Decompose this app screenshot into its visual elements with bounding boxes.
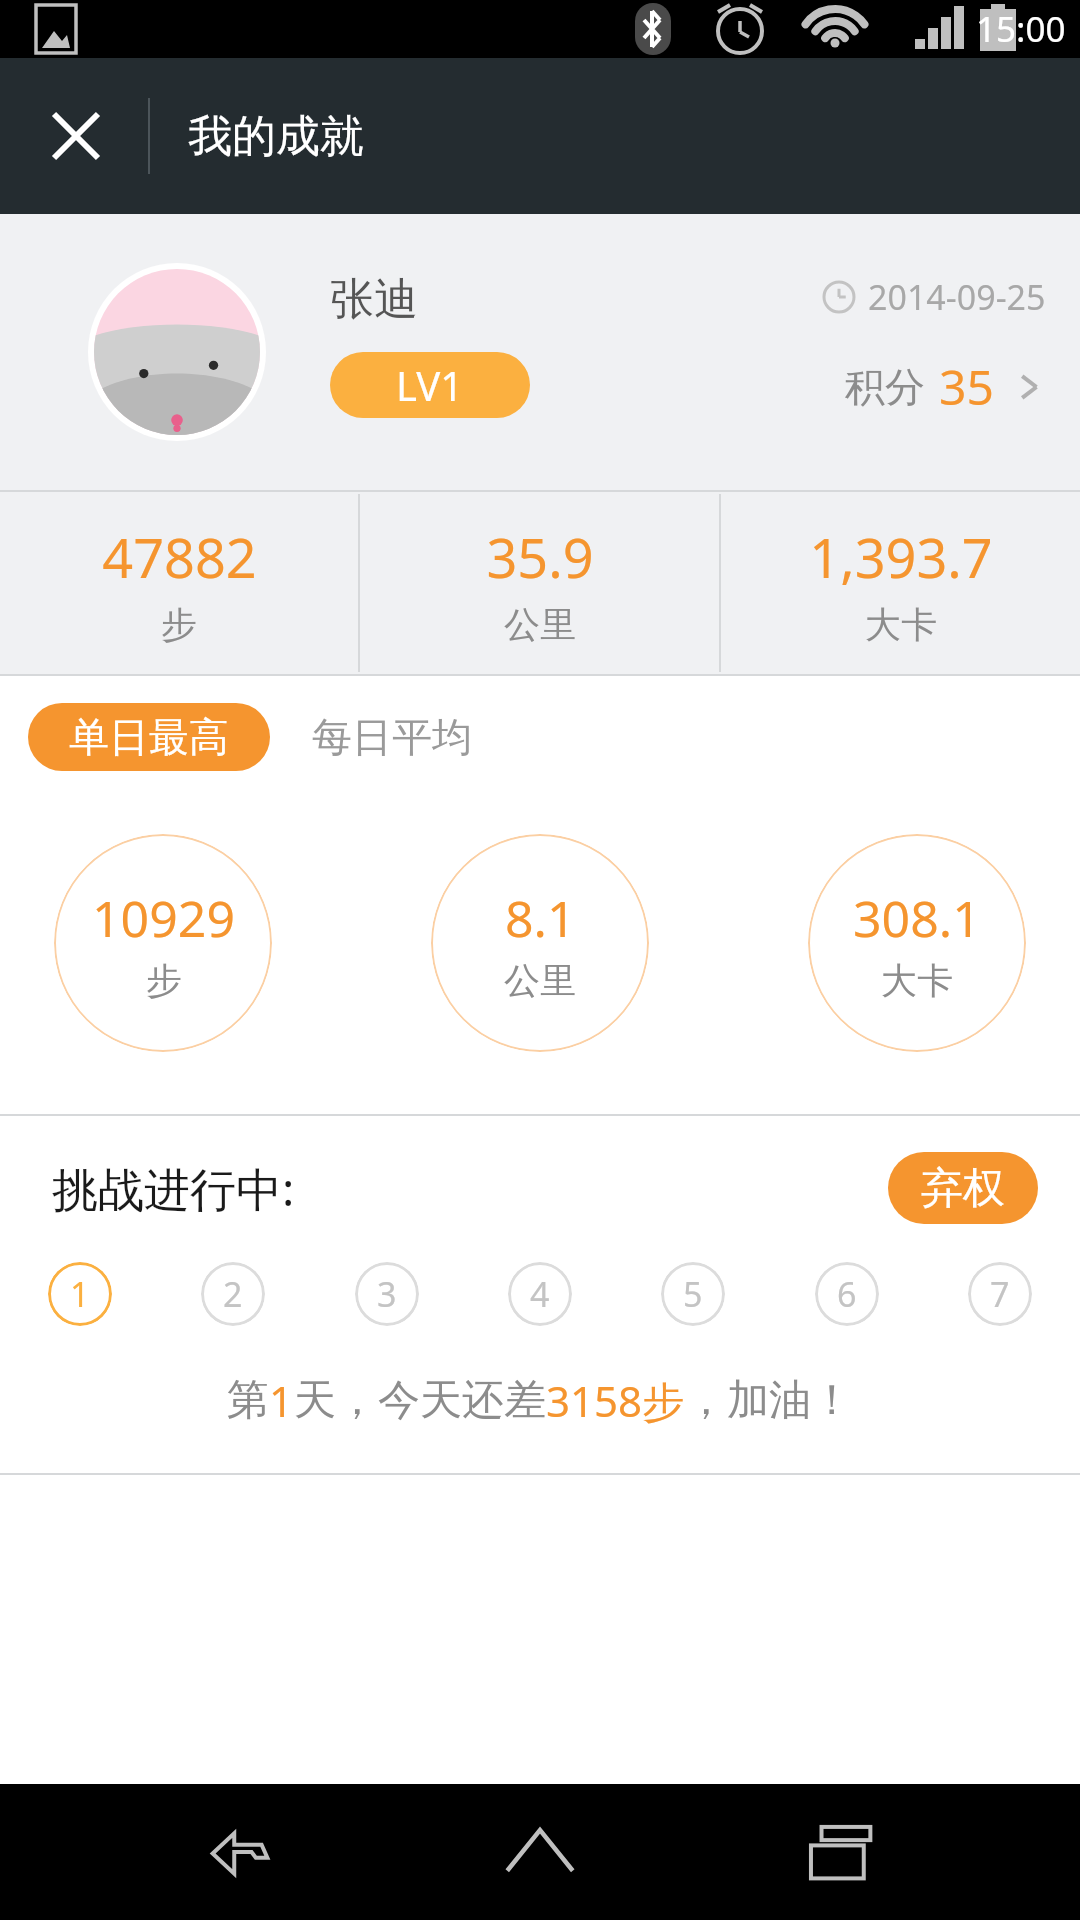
staticText: 1 (70, 1271, 90, 1317)
button[interactable]: Back (180, 1792, 300, 1912)
staticText: 3 (377, 1271, 397, 1317)
staticText: 第 (227, 1374, 269, 1427)
staticText: 步 (161, 602, 197, 647)
button[interactable]: 6 (815, 1262, 879, 1326)
staticText: 5 (683, 1271, 703, 1317)
button[interactable]: 1 (48, 1262, 112, 1326)
staticText: 大卡 (881, 958, 953, 1003)
button[interactable]: 3 (355, 1262, 419, 1326)
staticText: 积分 (845, 362, 925, 412)
button[interactable]: 10929 (54, 834, 272, 1052)
button[interactable]: 8.1 (431, 834, 649, 1052)
button[interactable]: 积分 (845, 354, 1062, 419)
staticText: 每日平均 (312, 712, 472, 762)
staticText: 大卡 (865, 602, 937, 647)
button[interactable]: 4 (508, 1262, 572, 1326)
button[interactable]: LV1 (330, 352, 530, 418)
staticText: 步 (146, 958, 182, 1003)
button[interactable]: Home (480, 1792, 600, 1912)
staticText: 6 (837, 1271, 857, 1317)
button[interactable]: 1,393.7 (721, 492, 1080, 674)
button[interactable]: 7 (968, 1262, 1032, 1326)
button[interactable]: 弃权 (888, 1152, 1038, 1224)
staticText: 公里 (504, 602, 576, 647)
staticText: 我的成就 (188, 109, 364, 164)
button[interactable]: 2 (201, 1262, 265, 1326)
button[interactable]: Close (34, 94, 118, 178)
staticText: 1,393.7 (809, 520, 993, 594)
staticText: 张迪 (330, 272, 418, 327)
button[interactable]: Avatar (94, 269, 260, 435)
staticText: LV1 (396, 358, 464, 412)
staticText: ，加油！ (685, 1374, 853, 1427)
staticText: 8.1 (505, 884, 576, 952)
button[interactable]: Recents (780, 1792, 900, 1912)
staticText: 35.9 (486, 520, 594, 594)
staticText: 15:00 (976, 5, 1066, 53)
staticText: 10929 (92, 884, 235, 952)
staticText: 7 (990, 1271, 1010, 1317)
staticText: 2 (223, 1271, 243, 1317)
button[interactable]: 308.1 (808, 834, 1026, 1052)
staticText: 公里 (504, 958, 576, 1003)
button[interactable]: 35.9 (360, 492, 719, 674)
staticText: 47882 (102, 520, 257, 594)
button[interactable]: 5 (661, 1262, 725, 1326)
button[interactable]: 47882 (0, 492, 358, 674)
staticText: 1 (269, 1372, 294, 1429)
staticText: 308.1 (853, 884, 981, 952)
button[interactable]: 每日平均 (312, 703, 472, 771)
staticText: 3158步 (546, 1372, 685, 1429)
staticText: 35 (939, 354, 994, 419)
staticText: 2014-09-25 (868, 274, 1046, 320)
staticText: 挑战进行中: (52, 1157, 295, 1220)
staticText: 天，今天还差 (294, 1374, 546, 1427)
button[interactable]: 单日最高 (28, 703, 270, 771)
staticText: 弃权 (921, 1162, 1005, 1215)
staticText: 4 (530, 1271, 550, 1317)
staticText: 单日最高 (69, 712, 229, 762)
